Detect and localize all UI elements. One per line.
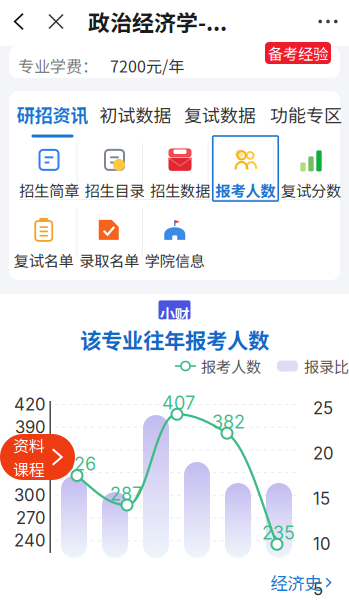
staticText: 政治经济学-... [88, 6, 227, 37]
staticText: 招生数据 [150, 179, 210, 201]
staticText: 备考经验 [268, 42, 328, 64]
staticText: 报考人数 [215, 179, 275, 201]
staticText: 25 [313, 398, 333, 418]
button[interactable]: Back [0, 0, 38, 43]
staticText: 360 [15, 440, 46, 460]
staticText: 复试分数 [281, 179, 341, 201]
button[interactable]: 资料课程 [0, 434, 75, 480]
button[interactable]: 招生目录 [82, 136, 147, 201]
button[interactable]: 招生数据 [147, 136, 213, 201]
staticText: 390 [15, 417, 46, 437]
staticText: 小财 [159, 302, 189, 325]
button[interactable]: 招生简章 [16, 136, 82, 201]
button[interactable]: Close [38, 0, 74, 43]
staticText: 382 [212, 411, 245, 433]
staticText: 招生简章 [19, 179, 79, 201]
staticText: 学院信息 [145, 249, 205, 271]
button[interactable]: 功能专区 [263, 91, 349, 135]
button[interactable]: More options [307, 0, 349, 43]
button[interactable]: 录取名单 [76, 206, 142, 271]
button[interactable]: 初试数据 [94, 91, 177, 135]
staticText: 300 [14, 485, 46, 505]
button[interactable]: 复试分数 [278, 136, 344, 201]
staticText: 270 [16, 508, 46, 528]
staticText: 功能专区 [270, 101, 342, 128]
staticText: 资料 [13, 433, 45, 456]
staticText: 经济史 [270, 570, 321, 595]
staticText: 招生目录 [84, 179, 144, 201]
staticText: 330 [15, 462, 46, 483]
button[interactable]: 研招资讯 [11, 91, 94, 135]
staticText: 该专业往年报考人数 [80, 324, 269, 355]
staticText: 5 [313, 579, 323, 599]
staticText: 专业学费： [18, 54, 98, 77]
staticText: 287 [110, 483, 142, 505]
staticText: 录取名单 [79, 249, 139, 271]
staticText: 240 [14, 530, 46, 551]
staticText: 420 [14, 394, 46, 415]
staticText: 复试数据 [184, 101, 256, 128]
staticText: 报考人数 [201, 355, 261, 377]
staticText: 326 [63, 453, 96, 475]
staticText: 研招资讯 [16, 101, 88, 128]
button[interactable]: 复试名单 [11, 206, 76, 271]
staticText: 20 [313, 443, 334, 463]
staticText: 235 [262, 522, 295, 544]
staticText: 报录比 [304, 355, 349, 377]
staticText: 10 [313, 534, 331, 554]
staticText: 407 [162, 392, 195, 414]
staticText: 15 [313, 488, 330, 509]
staticText: 复试名单 [14, 249, 74, 271]
button[interactable]: 备考经验 [265, 42, 331, 64]
button[interactable]: 学院信息 [142, 206, 207, 271]
staticText: 课程 [13, 457, 45, 481]
staticText: 7200元/年 [98, 54, 184, 77]
staticText: 初试数据 [99, 101, 171, 128]
button[interactable]: 经济史 [268, 566, 333, 599]
button[interactable]: 复试数据 [177, 91, 263, 135]
button[interactable]: 报考人数 [213, 136, 278, 201]
